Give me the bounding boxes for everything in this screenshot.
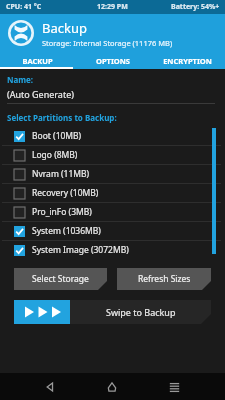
staticText: Swipe to Backup: [106, 306, 176, 318]
button[interactable]: Back: [39, 376, 61, 398]
button[interactable]: Nvram (11MB): [0, 165, 225, 183]
staticText: Name:: [7, 74, 34, 85]
staticText: Recovery (10MB): [32, 187, 99, 199]
staticText: Refresh Sizes: [138, 273, 191, 285]
staticText: Pro_inFo (3MB): [32, 206, 92, 218]
staticText: System Image (3072MB): [32, 244, 129, 256]
staticText: Select Storage: [32, 273, 89, 285]
button[interactable]: System Image (3072MB): [0, 241, 225, 259]
button[interactable]: Swipe to Backup: [14, 300, 211, 324]
staticText: (Auto Generate): [7, 88, 74, 100]
button[interactable]: Logo (8MB): [0, 146, 225, 164]
button[interactable]: Refresh Sizes: [117, 268, 211, 290]
button[interactable]: Pro_inFo (3MB): [0, 203, 225, 221]
button[interactable]: BACKUP: [0, 52, 75, 69]
staticText: CPU: 41 °C: [6, 2, 42, 12]
button[interactable]: OPTIONS: [75, 52, 150, 69]
button[interactable]: Recovery (10MB): [0, 184, 225, 202]
staticText: 12:29 PM: [97, 2, 128, 12]
staticText: Boot (10MB): [32, 130, 82, 142]
button[interactable]: Select Storage: [14, 268, 107, 290]
staticText: System (1036MB): [32, 225, 101, 237]
staticText: OPTIONS: [96, 56, 130, 66]
button[interactable]: Recents: [163, 376, 185, 398]
staticText: BACKUP: [22, 56, 53, 66]
staticText: Battery: 54%+: [171, 2, 220, 12]
button[interactable]: System (1036MB): [0, 222, 225, 240]
staticText: Storage: Internal Storage (11176 MB): [42, 38, 173, 48]
button[interactable]: ENCRYPTION: [150, 52, 225, 69]
staticText: Select Partitions to Backup:: [7, 112, 117, 123]
button[interactable]: Backup: [0, 14, 225, 52]
button[interactable]: Boot (10MB): [0, 127, 225, 145]
staticText: ENCRYPTION: [163, 56, 212, 66]
button[interactable]: Home: [101, 376, 123, 398]
staticText: Backup: [42, 19, 87, 37]
staticText: Logo (8MB): [32, 149, 78, 161]
staticText: Nvram (11MB): [32, 168, 90, 180]
